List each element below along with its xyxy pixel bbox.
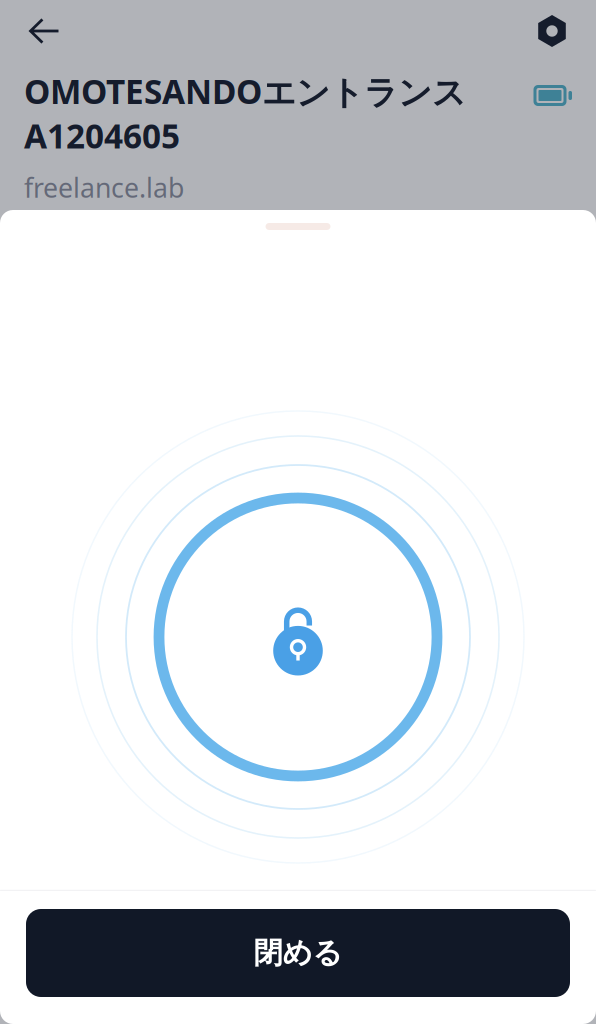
staticText: OMOTESANDOエントランス [24, 69, 466, 113]
staticText: A1204605 [24, 113, 180, 158]
staticText: freelance.lab [24, 170, 184, 205]
button[interactable]: Settings [528, 11, 572, 51]
button[interactable]: 閉める [26, 909, 570, 997]
button[interactable]: Back [24, 11, 68, 51]
staticText: 閉める [253, 935, 342, 971]
